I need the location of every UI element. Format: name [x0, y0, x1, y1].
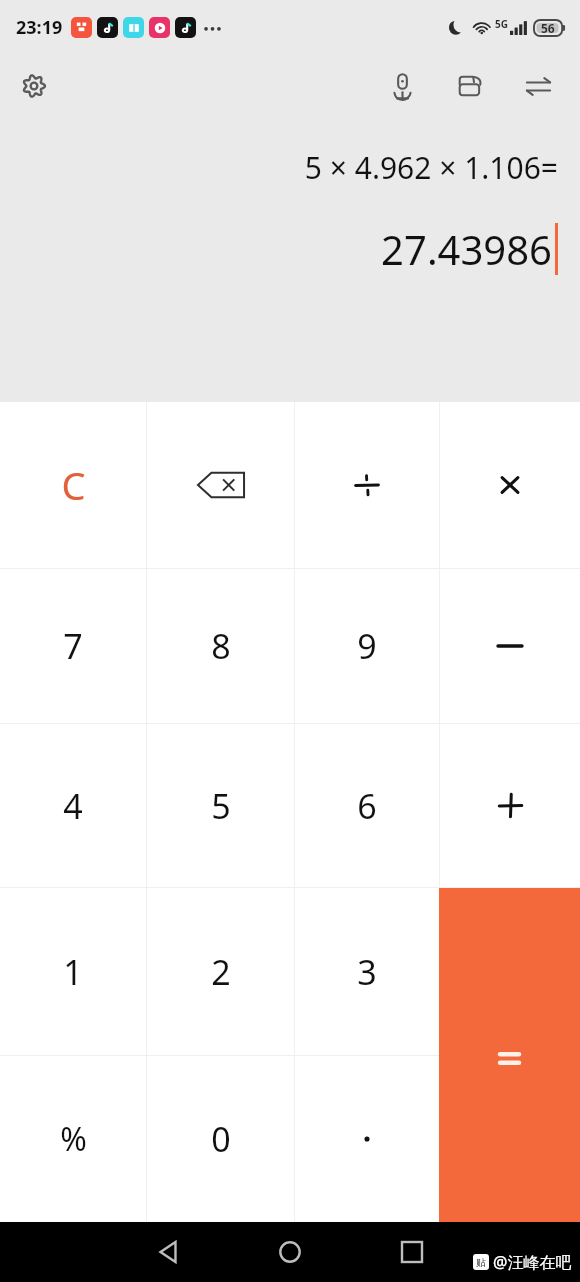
button[interactable]: 3	[295, 888, 439, 1055]
button[interactable]: Decimal point	[295, 1056, 439, 1222]
staticText: 5 × 4.962 × 1.106=	[304, 147, 558, 188]
button[interactable]: 6	[295, 724, 439, 887]
staticText: 0	[211, 1116, 231, 1162]
button[interactable]: Unit converter	[514, 62, 562, 110]
button[interactable]: Voice input	[378, 62, 426, 110]
button[interactable]: Divide	[295, 402, 439, 568]
staticText: 8	[211, 623, 231, 669]
button[interactable]: Home	[259, 1222, 321, 1282]
staticText: 5G	[495, 17, 508, 31]
button[interactable]: Settings	[10, 62, 58, 110]
staticText: C	[61, 459, 86, 511]
button[interactable]: 8	[147, 569, 294, 723]
staticText: 5	[211, 783, 231, 829]
button[interactable]: Multiply	[440, 402, 580, 568]
staticText: 27.43986	[381, 222, 552, 276]
button[interactable]: 7	[0, 569, 146, 723]
staticText: 贴	[476, 1256, 486, 1269]
button[interactable]: Plus	[440, 724, 580, 887]
button[interactable]: Clear	[0, 402, 146, 568]
staticText: 2	[211, 949, 231, 995]
button[interactable]: Back	[137, 1222, 199, 1282]
button[interactable]: Minus	[440, 569, 580, 723]
staticText: 7	[63, 623, 83, 669]
button[interactable]: Backspace	[147, 402, 294, 568]
button[interactable]: Equals	[439, 888, 580, 1222]
button[interactable]: 0	[147, 1056, 294, 1222]
staticText: %	[60, 1117, 87, 1161]
button[interactable]: 2	[147, 888, 294, 1055]
button[interactable]: %	[0, 1056, 146, 1222]
staticText: 4	[63, 783, 83, 829]
staticText: 9	[357, 623, 377, 669]
button[interactable]: 4	[0, 724, 146, 887]
button[interactable]: 5	[147, 724, 294, 887]
button[interactable]: 9	[295, 569, 439, 723]
button[interactable]: 1	[0, 888, 146, 1055]
staticText: 3	[357, 949, 377, 995]
staticText: 1	[63, 949, 83, 995]
staticText: 56	[541, 20, 555, 36]
button[interactable]: Recent apps	[381, 1222, 443, 1282]
button[interactable]: History	[446, 62, 494, 110]
staticText: 6	[357, 783, 377, 829]
staticText: @汪峰在吧	[493, 1251, 572, 1273]
staticText: 23:19	[16, 15, 63, 40]
